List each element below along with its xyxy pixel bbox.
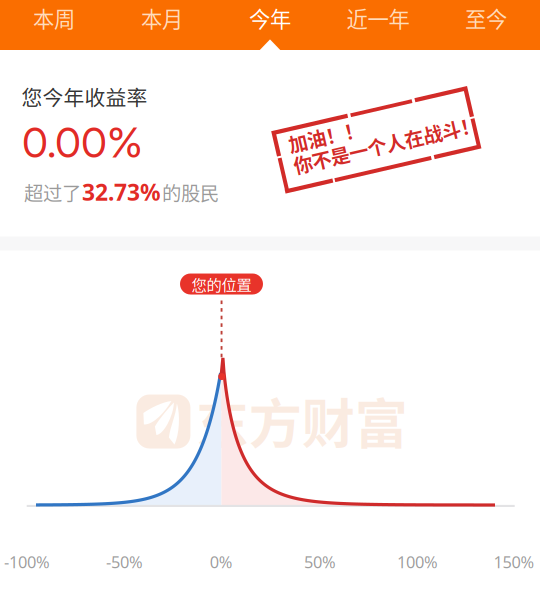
button[interactable]: 本月 [108, 0, 216, 43]
staticText: 您的位置 [191, 273, 251, 295]
button[interactable]: 本周 [0, 0, 108, 43]
staticText: 50% [304, 551, 336, 573]
staticText: 你不是一个人在战斗！ [290, 132, 480, 160]
staticText: 本月 [141, 3, 183, 33]
staticText: 0.00% [22, 117, 143, 168]
staticText: 的股民 [162, 178, 219, 206]
staticText: 加油！！ [290, 111, 366, 139]
button[interactable]: 至今 [432, 0, 540, 43]
staticText: 32.73% [82, 176, 161, 208]
staticText: 近一年 [346, 3, 409, 33]
staticText: 东方财富 [196, 382, 408, 459]
button[interactable]: 今年 [216, 0, 324, 43]
staticText: 100% [397, 551, 438, 573]
staticText: -50% [106, 551, 143, 573]
staticText: 0% [210, 551, 233, 573]
button[interactable]: 近一年 [324, 0, 432, 43]
staticText: 超过了 [24, 178, 81, 206]
staticText: 本周 [33, 3, 75, 33]
staticText: -100% [4, 551, 50, 573]
staticText: 您今年收益率 [21, 81, 147, 111]
staticText: 至今 [465, 3, 507, 33]
staticText: 今年 [249, 3, 291, 33]
staticText: 150% [493, 551, 534, 573]
